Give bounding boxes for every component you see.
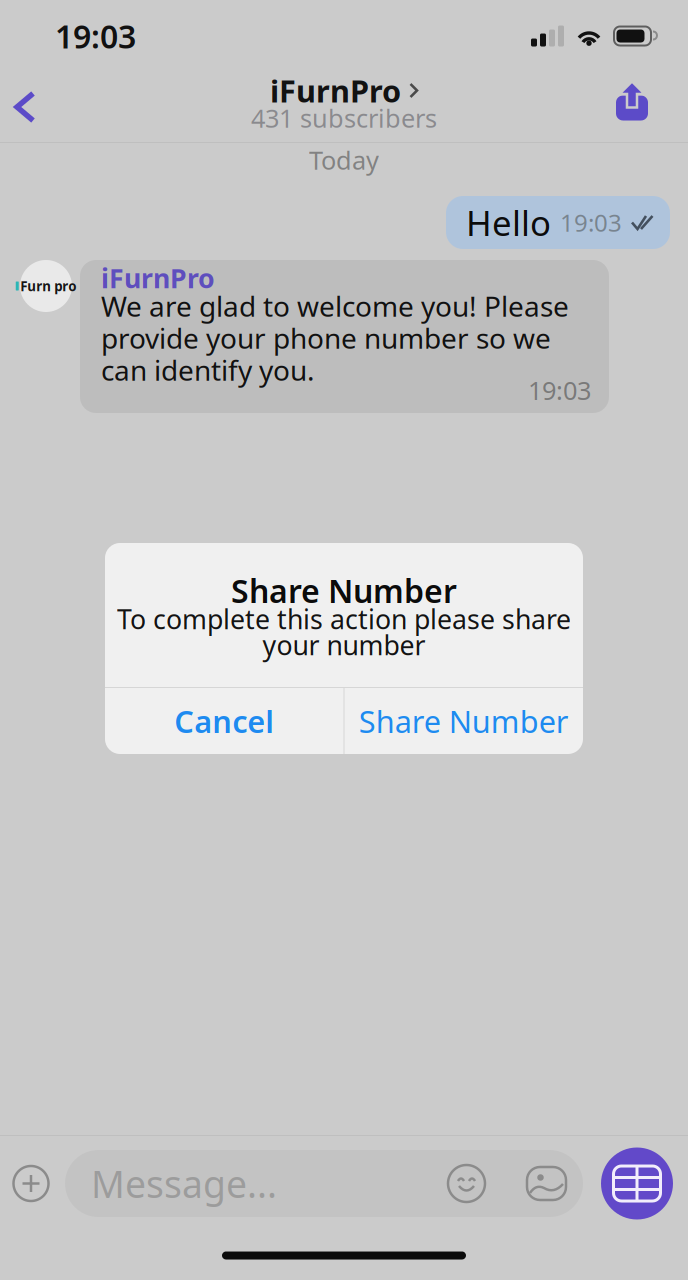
staticText: To complete this action please share: [117, 601, 571, 637]
button[interactable]: Back: [0, 79, 56, 135]
button[interactable]: Share Number: [344, 688, 583, 754]
staticText: Cancel: [174, 701, 274, 741]
staticText: iFurnPro: [270, 70, 401, 111]
button[interactable]: Apps: [583, 1147, 688, 1219]
staticText: Share Number: [359, 701, 569, 741]
button[interactable]: Attach: [0, 1150, 65, 1216]
button[interactable]: Share: [595, 81, 688, 132]
staticText: iFurnPro: [101, 260, 215, 296]
staticText: Message...: [91, 1159, 277, 1208]
staticText: can identify you.: [101, 351, 315, 389]
staticText: Furn pro: [20, 277, 76, 295]
staticText: provide your phone number so we: [101, 319, 551, 357]
staticText: your number: [262, 627, 425, 663]
staticText: Today: [309, 143, 379, 177]
button[interactable]: Emoji: [434, 1151, 506, 1216]
staticText: 19:03: [528, 373, 591, 407]
staticText: Hello: [466, 199, 551, 245]
button[interactable]: Cancel: [105, 688, 343, 754]
staticText: 431 subscribers: [251, 101, 437, 135]
staticText: 19:03: [560, 207, 622, 238]
button[interactable]: Stickers: [506, 1151, 583, 1216]
staticText: Share Number: [231, 569, 457, 612]
staticText: 19:03: [55, 15, 136, 57]
staticText: We are glad to welcome you! Please: [101, 287, 569, 325]
